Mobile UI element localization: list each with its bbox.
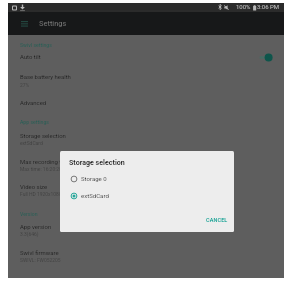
staticText: Storage 0 [81,175,107,182]
button[interactable] [8,242,284,267]
staticText: 27% [20,82,30,88]
button[interactable]: CANCEL [203,212,231,228]
staticText: Settings [39,19,67,28]
button[interactable] [8,218,284,242]
staticText: App settings [20,119,49,125]
button[interactable]: extSdCard [60,188,234,204]
staticText: 3.3(646) [20,231,39,237]
staticText: Storage selection [69,158,125,166]
staticText: Video size [20,183,48,190]
staticText: CANCEL [206,217,228,223]
staticText: Max time: 16:20:20 [20,166,62,172]
staticText: extSdCard [81,192,109,199]
button[interactable]: Auto tilt toggle [256,51,276,64]
staticText: Version [20,211,38,217]
staticText: Base battery health [20,73,71,80]
button[interactable]: Storage 0 [60,171,234,187]
staticText: Advanced [20,99,47,106]
button[interactable] [8,50,284,67]
staticText: Auto tilt [20,53,41,60]
staticText: Full HD 1920x1080 [20,191,62,197]
staticText: extSdCard [20,140,43,146]
staticText: SWIVL: FW052205 [20,257,61,263]
staticText: Swivl firmware [20,249,59,256]
staticText: Swivl settings [20,42,52,48]
button[interactable] [8,67,284,92]
staticText: Storage selection [20,132,66,139]
button[interactable] [8,127,284,150]
staticText: Max recording time [20,158,72,165]
staticText: 3:06 PM [257,3,280,10]
staticText: App version [20,223,52,230]
staticText: 100% [236,3,251,10]
button[interactable] [8,176,284,202]
button[interactable]: Open navigation drawer [13,12,35,34]
button[interactable] [8,150,284,176]
